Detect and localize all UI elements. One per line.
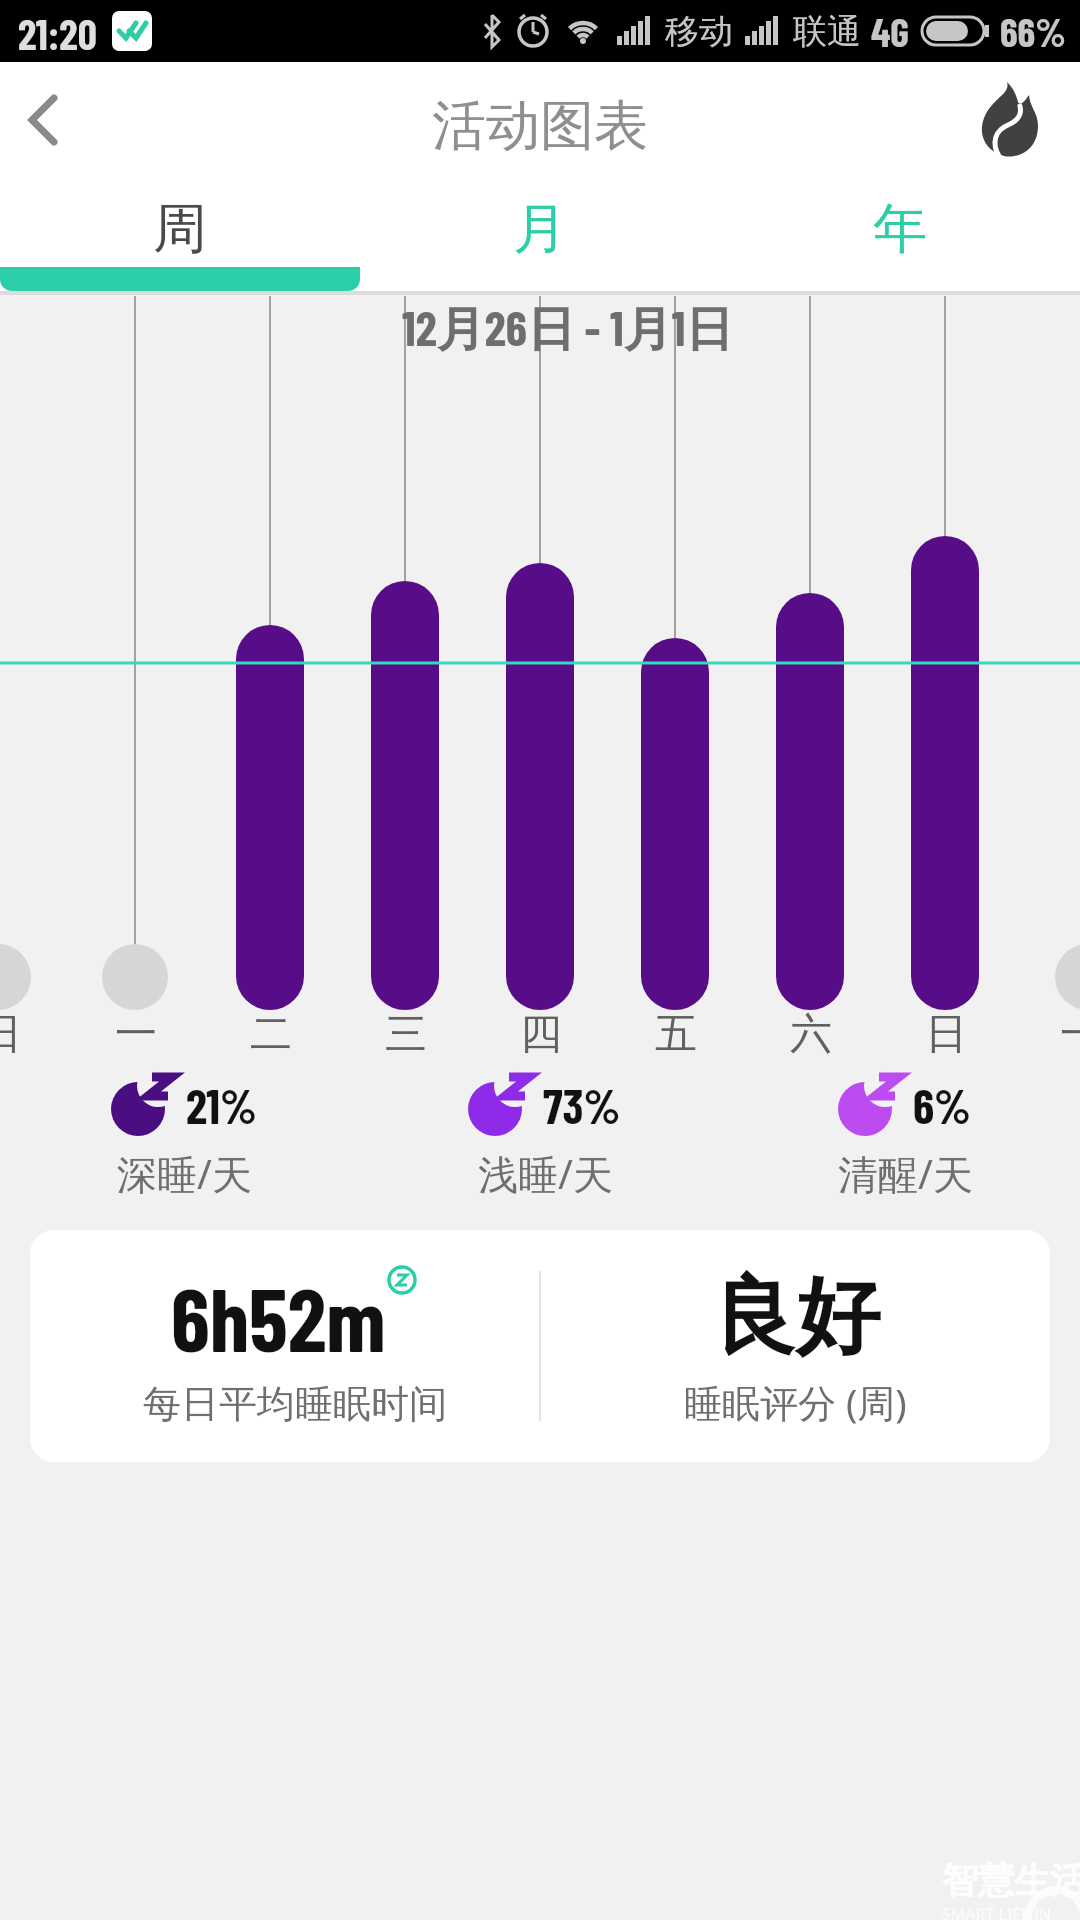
button[interactable]: [975, 78, 1049, 162]
staticText: 日: [0, 1008, 22, 1061]
staticText: 三: [385, 1008, 427, 1061]
button[interactable]: 73%: [365, 1072, 725, 1201]
staticText: 73%: [543, 1076, 621, 1134]
button[interactable]: 6%: [725, 1072, 1080, 1201]
staticText: 深睡/天: [117, 1146, 252, 1201]
staticText: 四: [520, 1008, 562, 1061]
staticText: 6%: [913, 1076, 971, 1134]
staticText: 良好: [712, 1264, 880, 1370]
staticText: 睡眠评分 (周): [684, 1376, 907, 1428]
staticText: 月: [513, 195, 567, 263]
staticText: 周: [153, 195, 207, 263]
button[interactable]: 年: [720, 190, 1080, 268]
staticText: 12月26日 - 1月1日: [402, 298, 734, 360]
staticText: 五: [655, 1008, 697, 1061]
button[interactable]: [14, 88, 78, 152]
staticText: SMART LIFE IN: [942, 1903, 1052, 1920]
staticText: 6h52m: [171, 1264, 386, 1370]
staticText: 移动: [665, 10, 733, 53]
staticText: 21:20: [18, 8, 97, 58]
staticText: 智慧生活: [942, 1858, 1080, 1903]
button[interactable]: 月: [360, 190, 720, 268]
staticText: 六: [790, 1008, 832, 1061]
staticText: 浅睡/天: [478, 1146, 613, 1201]
staticText: 一: [115, 1008, 157, 1061]
staticText: 活动图表: [432, 92, 648, 160]
staticText: 联通: [793, 10, 861, 53]
button[interactable]: 良好: [540, 1230, 1050, 1462]
staticText: 年: [873, 195, 927, 263]
staticText: 一: [1060, 1008, 1080, 1061]
button[interactable]: 6h52m: [30, 1230, 540, 1462]
staticText: 4G: [871, 7, 910, 55]
staticText: 日: [925, 1008, 967, 1061]
button[interactable]: 21%: [4, 1072, 364, 1201]
button[interactable]: 周: [0, 190, 360, 268]
staticText: 21%: [186, 1076, 257, 1134]
staticText: 66%: [1000, 7, 1066, 55]
staticText: 二: [250, 1008, 292, 1061]
staticText: 每日平均睡眠时间: [143, 1380, 447, 1428]
staticText: 清醒/天: [838, 1146, 973, 1201]
